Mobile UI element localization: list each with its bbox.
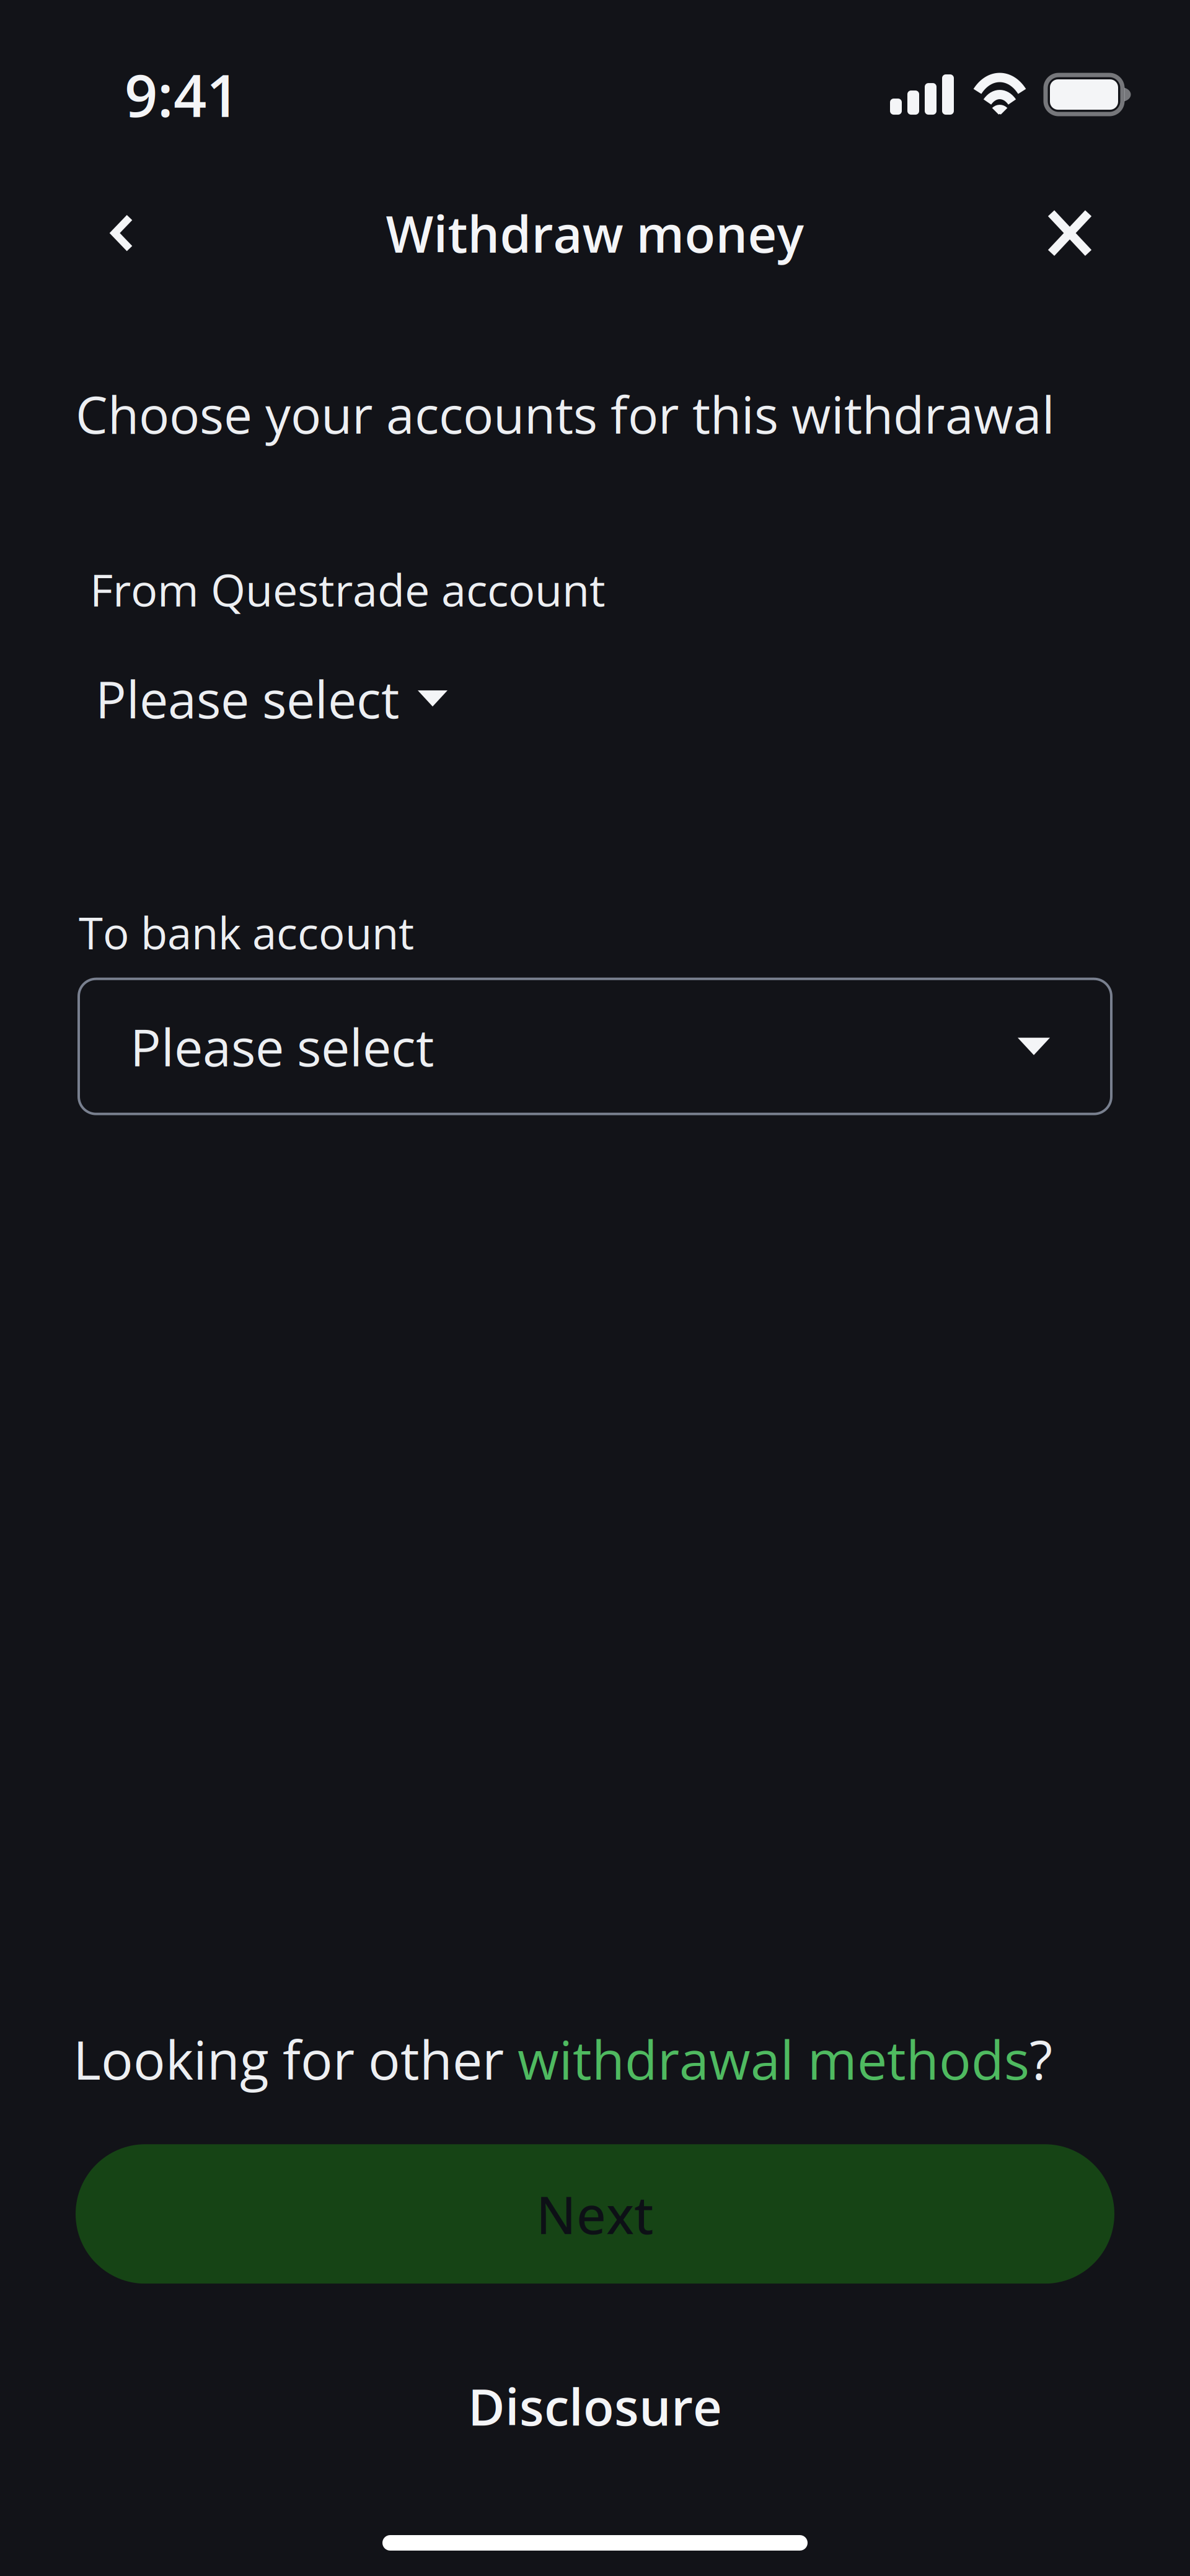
button[interactable]: Back xyxy=(82,193,162,273)
staticText: Looking for other xyxy=(73,2023,518,2095)
staticText: withdrawal methods xyxy=(518,2023,1029,2095)
staticText: To bank account xyxy=(79,902,414,962)
button[interactable]: Disclosure xyxy=(468,2372,722,2440)
staticText: Please select xyxy=(130,1011,434,1081)
button[interactable]: Please select xyxy=(0,664,466,733)
staticText: Next xyxy=(536,2178,654,2249)
staticText: Please select xyxy=(95,664,399,733)
staticText: ? xyxy=(1029,2023,1052,2095)
button[interactable]: Looking for other withdrawal methods? xyxy=(0,2023,1052,2095)
staticText: From Questrade account xyxy=(90,559,606,620)
staticText: Disclosure xyxy=(468,2372,722,2440)
staticText: Withdraw money xyxy=(386,199,804,267)
staticText: 9:41 xyxy=(125,55,239,134)
button[interactable]: Next xyxy=(76,2144,1114,2284)
button[interactable]: Please select xyxy=(79,979,1111,1114)
button[interactable]: Close xyxy=(1029,193,1110,273)
staticText: Choose your accounts for this withdrawal xyxy=(76,379,1055,449)
